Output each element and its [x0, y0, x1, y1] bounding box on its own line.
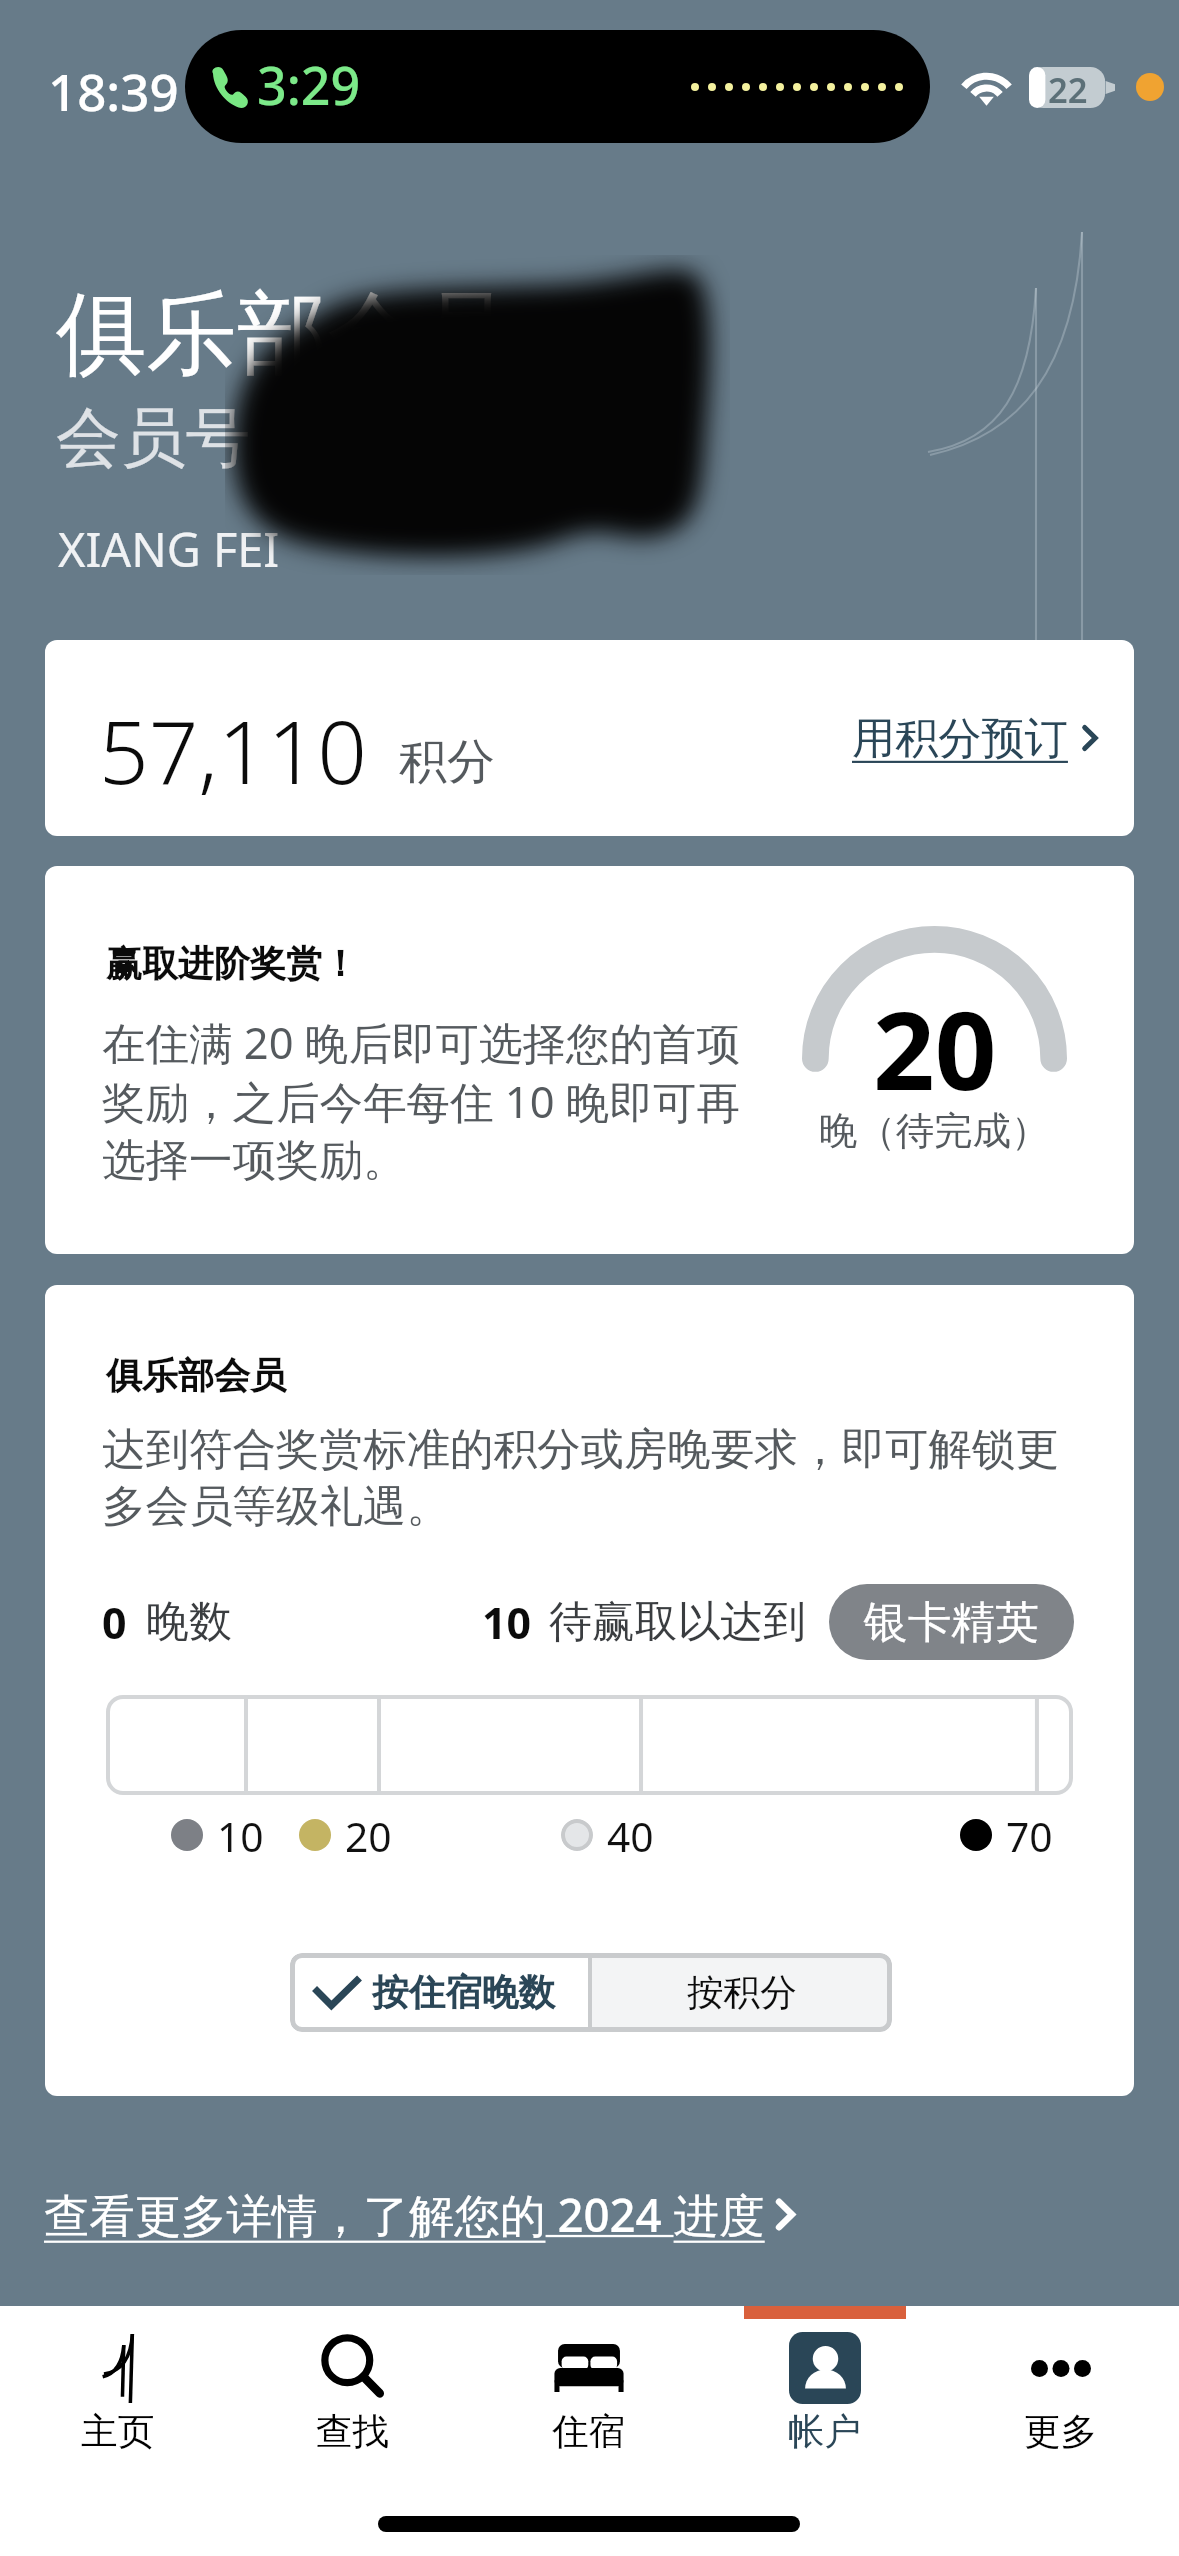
staticText: 更多 — [1024, 2409, 1098, 2455]
staticText: 银卡精英 — [864, 1595, 1040, 1650]
staticText: 主页 — [81, 2409, 155, 2455]
other: Search — [319, 2334, 388, 2403]
staticText: 10 — [482, 1593, 532, 1651]
staticText: 俱乐部会员 — [106, 1353, 286, 1398]
staticText: 住宿 — [552, 2409, 626, 2455]
button[interactable]: Account — [707, 2319, 943, 2556]
staticText: 18:39 — [48, 56, 179, 125]
button[interactable]: 银卡精英 — [829, 1584, 1074, 1660]
staticText: 晚数 — [146, 1595, 232, 1649]
staticText: 俱乐部会员 — [56, 278, 509, 392]
staticText: 40 — [607, 1808, 654, 1862]
staticText: 查找 — [316, 2409, 390, 2455]
button[interactable]: Home — [0, 2319, 235, 2556]
staticText: 10 — [217, 1808, 264, 1862]
staticText: 20 — [345, 1808, 392, 1862]
staticText: 在住满 20 晚后即可选择您的首项奖励，之后今年每住 10 晚即可再选择一项奖励… — [102, 1012, 759, 1187]
other: Account — [789, 2332, 861, 2404]
staticText: 查看更多详情，了解您的 2024 进度 — [44, 2183, 765, 2245]
staticText: 会员号 130688275 — [56, 391, 601, 480]
staticText: XIANG FEI — [58, 517, 280, 581]
staticText: 按住宿晚数 — [372, 1970, 555, 2016]
staticText: 待赢取以达到 — [549, 1595, 807, 1649]
staticText: 积分 — [399, 732, 495, 792]
button[interactable]: Stays — [471, 2319, 707, 2556]
staticText: 用积分预订 — [852, 711, 1068, 765]
staticText: 20 — [873, 975, 997, 1122]
other: Home — [102, 2334, 135, 2403]
other: More — [1031, 2360, 1091, 2377]
button[interactable]: Search — [235, 2319, 471, 2556]
button[interactable]: More — [943, 2319, 1179, 2556]
staticText: 57,110 — [99, 691, 367, 809]
staticText: 赢取进阶奖赏！ — [106, 941, 358, 986]
staticText: 晚（待完成） — [819, 1107, 1050, 1155]
staticText: 0 — [102, 1593, 127, 1651]
staticText: 达到符合奖赏标准的积分或房晚要求，即可解锁更多会员等级礼遇。 — [102, 1422, 1083, 1533]
button[interactable]: 按积分 — [592, 1953, 892, 2032]
staticText: 3:29 — [257, 50, 361, 121]
staticText: 22 — [1048, 66, 1088, 107]
button[interactable]: 用积分预订 — [834, 690, 1115, 786]
button[interactable]: 查看更多详情，了解您的 2024 进度 — [41, 2171, 812, 2257]
button[interactable]: 按住宿晚数 — [290, 1953, 588, 2032]
staticText: 按积分 — [687, 1970, 797, 2016]
staticText: 帐户 — [788, 2409, 862, 2455]
other: Stays — [553, 2344, 625, 2392]
staticText: 70 — [1006, 1808, 1053, 1862]
